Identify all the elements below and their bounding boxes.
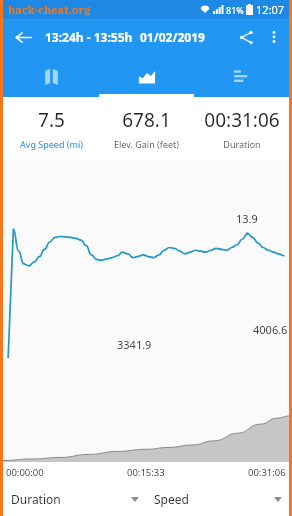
button[interactable]: 7.5 <box>3 107 99 150</box>
staticText: hack-cheat.org <box>8 2 91 17</box>
staticText: 13.9 <box>236 211 258 226</box>
staticText: 7.5 <box>38 107 65 133</box>
staticText: 81% <box>226 4 244 16</box>
staticText: 00:15:33 <box>127 466 165 479</box>
button[interactable]: Share <box>231 22 261 52</box>
button[interactable]: Speed <box>146 482 289 516</box>
button[interactable]: Map <box>3 55 99 97</box>
button[interactable]: 678.1 <box>99 107 194 150</box>
button[interactable]: Details <box>194 55 289 97</box>
staticText: 12:07 <box>256 2 285 17</box>
staticText: Avg Speed (mi) <box>20 138 83 150</box>
button[interactable]: 00:31:06 <box>194 107 289 150</box>
staticText: 00:31:06 <box>204 107 280 133</box>
staticText: Elev. Gain (feet) <box>114 138 179 150</box>
staticText: 4006.6 <box>253 322 288 337</box>
button[interactable]: Back <box>9 23 37 51</box>
staticText: Duration <box>11 491 61 507</box>
staticText: 3341.9 <box>117 337 152 352</box>
button[interactable]: Duration <box>3 482 146 516</box>
button[interactable]: More options <box>261 24 287 50</box>
staticText: 13:24h - 13:55h <box>45 29 133 45</box>
staticText: Speed <box>154 491 189 507</box>
staticText: 00:31:06 <box>248 466 286 479</box>
staticText: Duration <box>223 138 261 150</box>
staticText: 01/02/2019 <box>140 29 205 45</box>
staticText: 00:00:00 <box>6 466 44 479</box>
staticText: 678.1 <box>122 107 171 133</box>
button[interactable]: Charts <box>99 55 194 97</box>
